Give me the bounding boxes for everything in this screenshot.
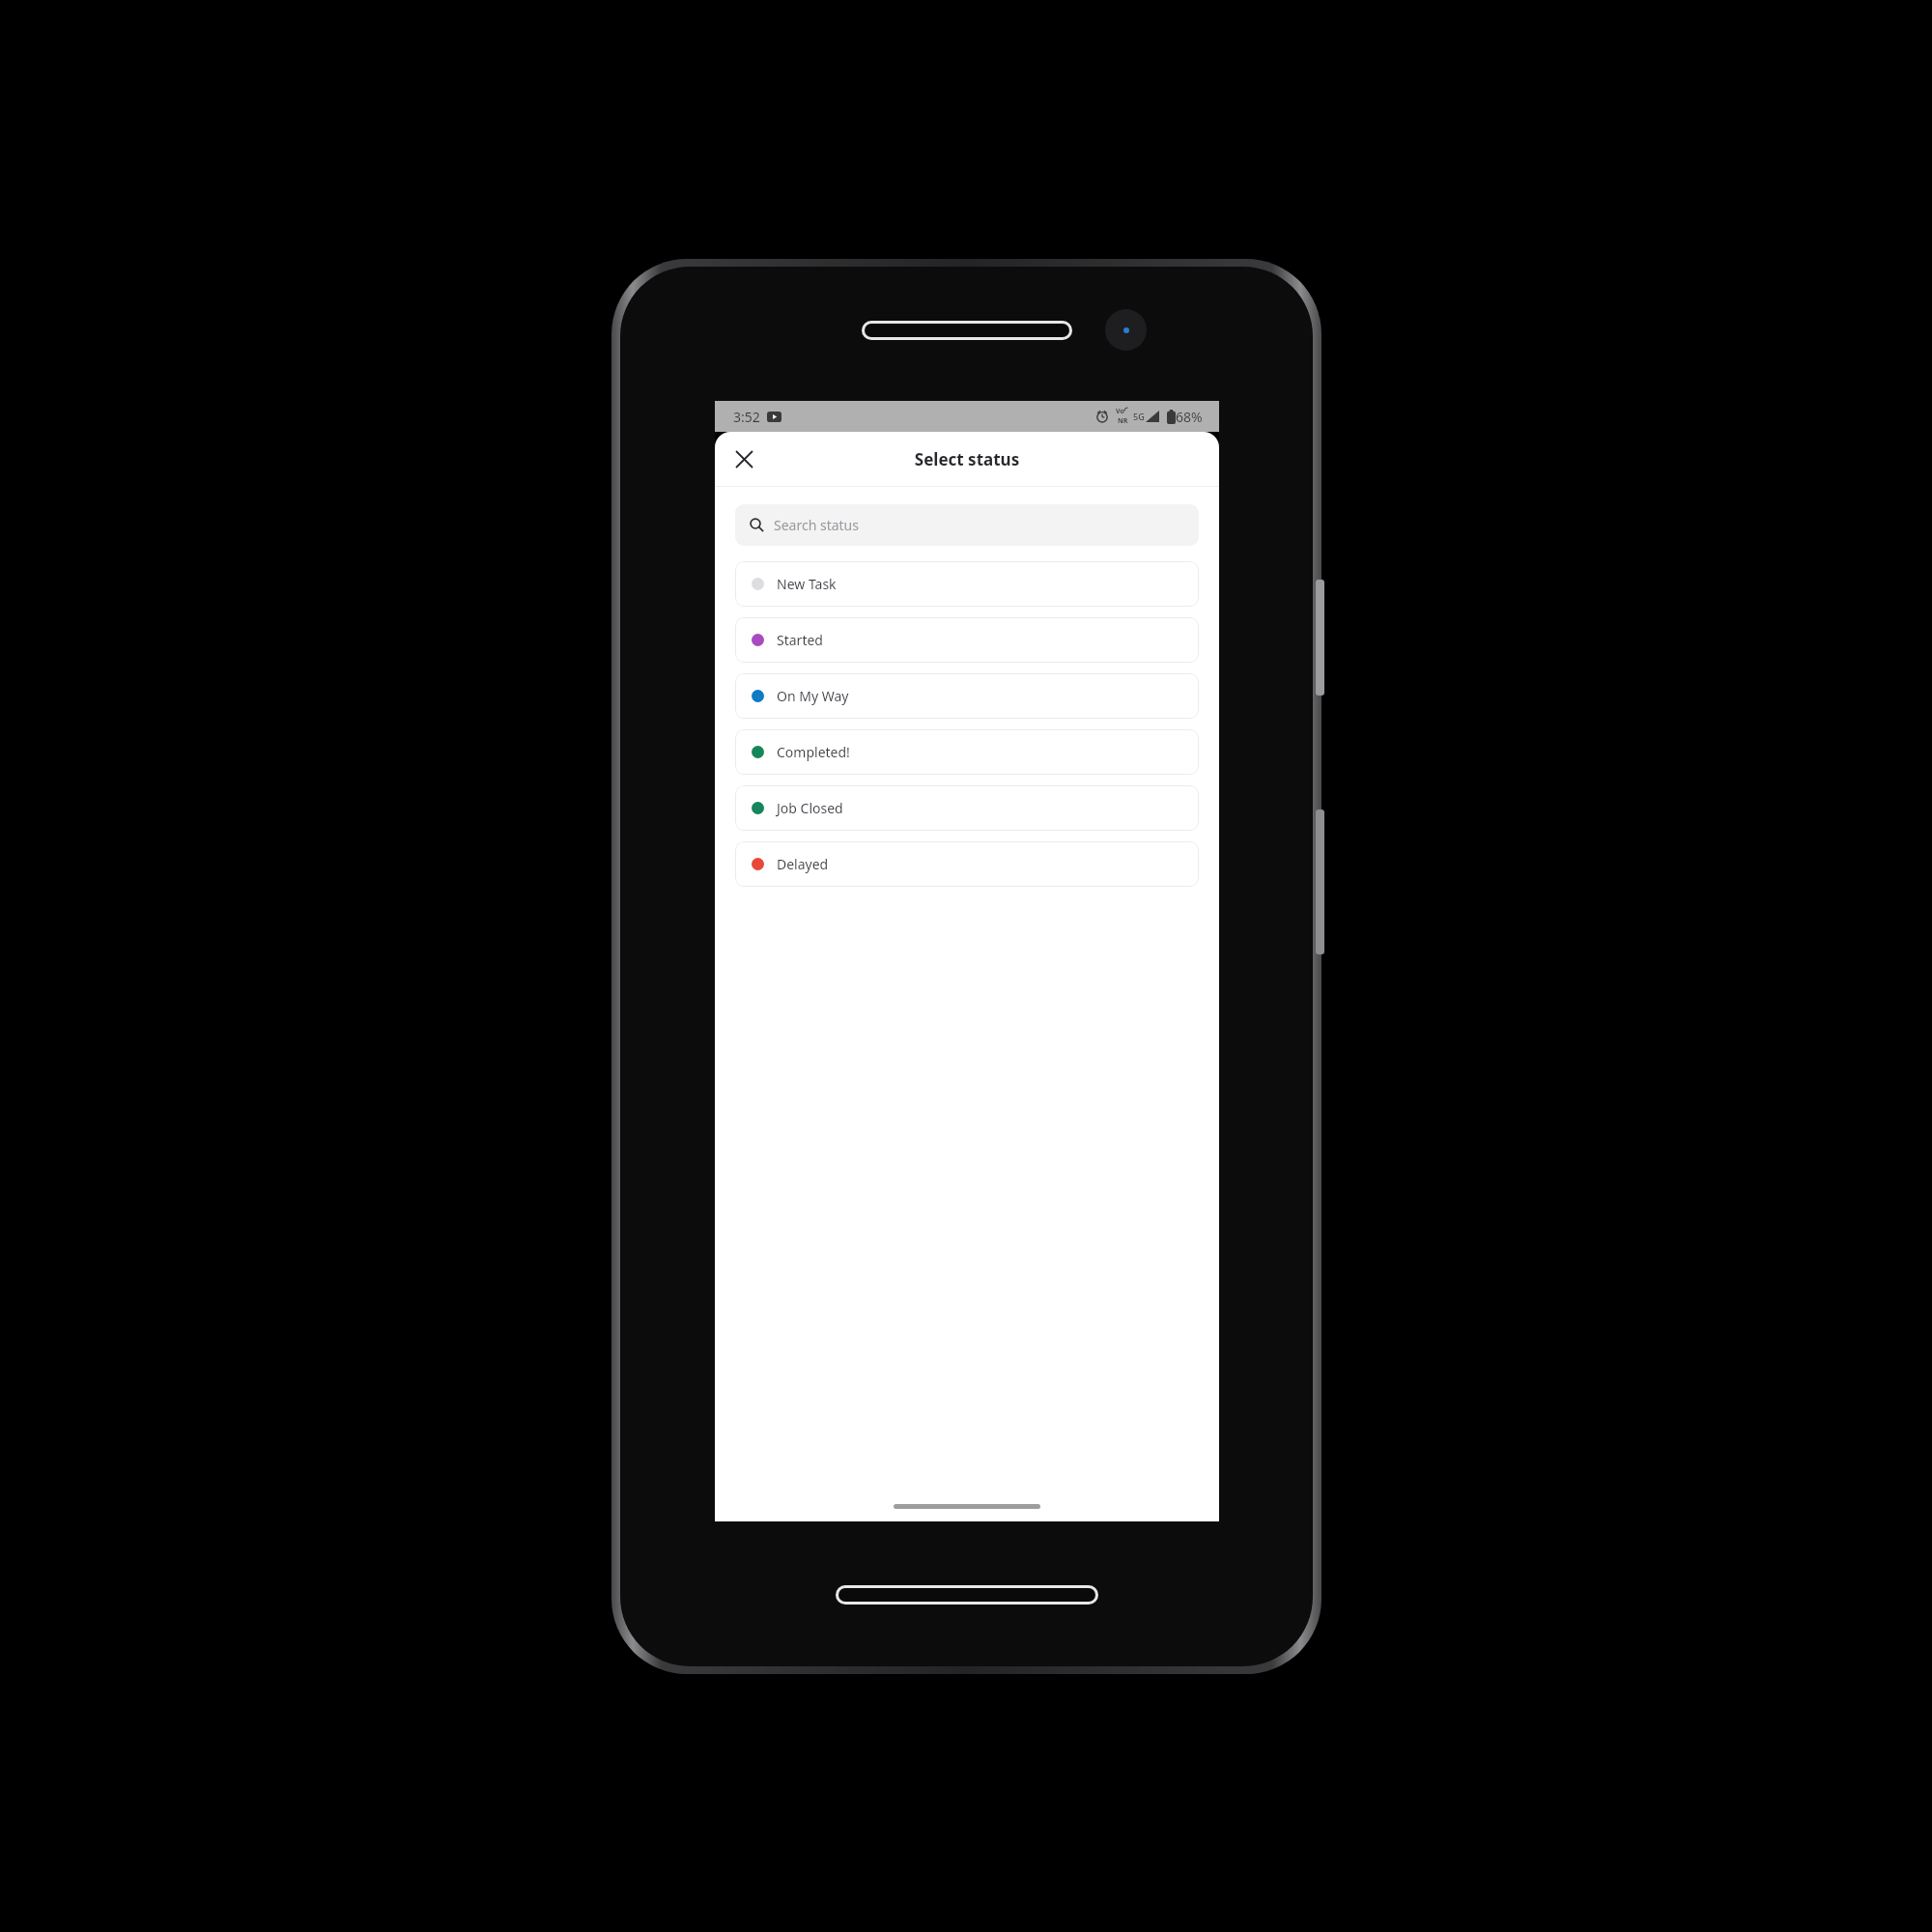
- button[interactable]: New Task: [735, 561, 1199, 607]
- button[interactable]: Started: [735, 617, 1199, 663]
- staticText: On My Way: [777, 687, 849, 705]
- staticText: 68%: [1176, 408, 1203, 426]
- button[interactable]: Completed!: [735, 729, 1199, 775]
- staticText: Vo: [1116, 407, 1124, 416]
- staticText: Search status: [774, 516, 859, 534]
- button[interactable]: Delayed: [735, 841, 1199, 887]
- staticText: Started: [777, 631, 823, 649]
- button[interactable]: Close: [724, 440, 763, 478]
- button[interactable]: On My Way: [735, 673, 1199, 719]
- staticText: 5G: [1133, 411, 1145, 422]
- staticText: Delayed: [777, 855, 829, 873]
- button[interactable]: Job Closed: [735, 785, 1199, 831]
- staticText: Select status: [715, 448, 1219, 470]
- button[interactable]: Search status: [735, 504, 1199, 546]
- staticText: New Task: [777, 575, 837, 593]
- staticText: Completed!: [777, 743, 850, 761]
- staticText: NR: [1118, 416, 1128, 426]
- staticText: Job Closed: [777, 799, 843, 817]
- staticText: 3:52: [733, 408, 760, 426]
